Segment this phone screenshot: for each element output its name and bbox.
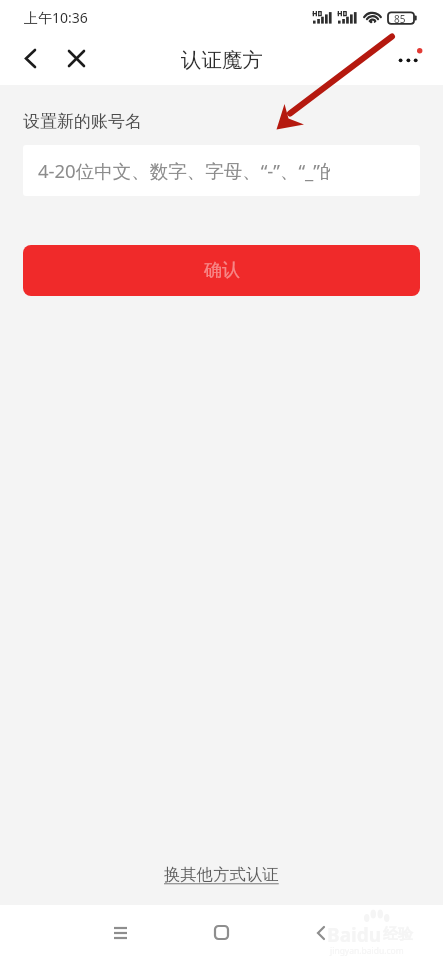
button[interactable]: Close	[54, 36, 98, 80]
staticText: 确认	[204, 259, 240, 282]
button[interactable]: 换其他方式认证	[0, 864, 443, 885]
staticText: 认证魔方	[181, 47, 263, 73]
button[interactable]: Home	[197, 908, 246, 957]
button[interactable]: Back	[8, 36, 52, 80]
button[interactable]: Recent apps	[96, 908, 145, 957]
staticText: jingyan.baidu.com	[330, 945, 404, 957]
button[interactable]: 4-20位中文、数字、字母、“-”、“_”的组合	[23, 145, 420, 196]
button[interactable]: 确认	[23, 245, 420, 296]
staticText: 上午10:36	[24, 8, 88, 27]
staticText: 换其他方式认证	[164, 864, 279, 885]
staticText: 设置新的账号名	[23, 111, 142, 132]
staticText: 85	[394, 12, 406, 26]
staticText: 经验	[383, 925, 413, 944]
staticText: 4-20位中文、数字、字母、“-”、“_”的组合	[38, 158, 330, 183]
staticText: Baidu	[327, 922, 382, 948]
button[interactable]: More options	[386, 38, 430, 82]
button[interactable]: Back	[296, 908, 345, 957]
